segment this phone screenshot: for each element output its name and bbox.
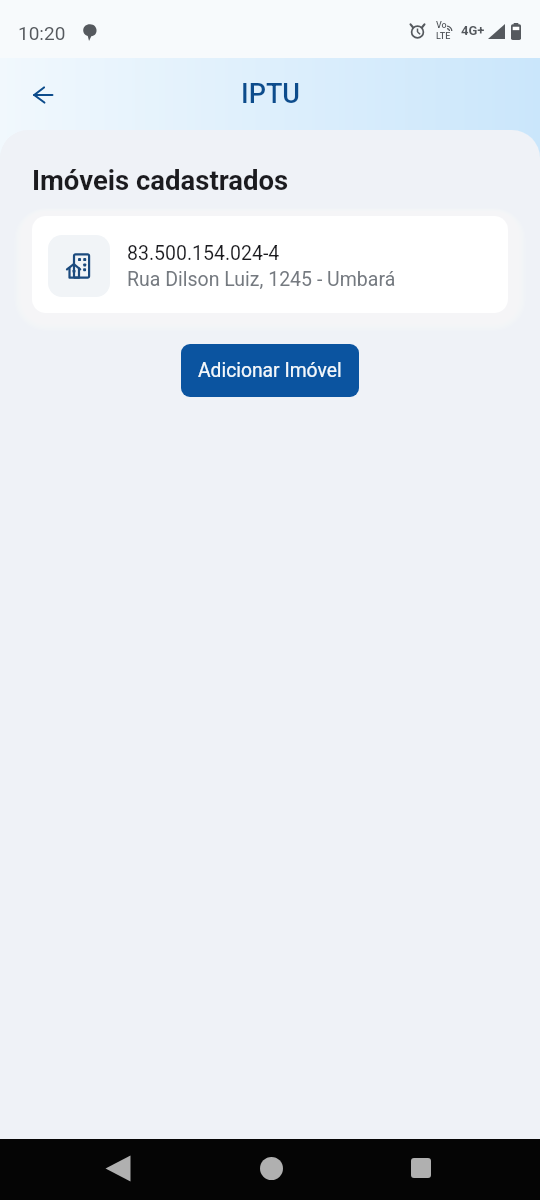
staticText: Adicionar Imóvel <box>198 359 342 382</box>
button[interactable]: Adicionar Imóvel <box>181 344 359 397</box>
button[interactable]: Voltar <box>22 75 64 117</box>
staticText: Rua Dilson Luiz, 1245 - Umbará <box>127 268 396 291</box>
button[interactable]: Back <box>94 1144 142 1192</box>
button[interactable]: Home <box>247 1144 295 1192</box>
button[interactable]: Recents <box>397 1144 445 1192</box>
staticText: LTE <box>436 31 451 42</box>
staticText: 10:20 <box>18 22 66 44</box>
staticText: Imóveis cadastrados <box>32 164 289 196</box>
button[interactable]: 83.500.154.024-4 <box>32 216 508 313</box>
staticText: Vo <box>436 20 447 31</box>
staticText: 83.500.154.024-4 <box>127 242 280 265</box>
staticText: 4G+ <box>461 23 485 38</box>
staticText: IPTU <box>241 78 300 110</box>
